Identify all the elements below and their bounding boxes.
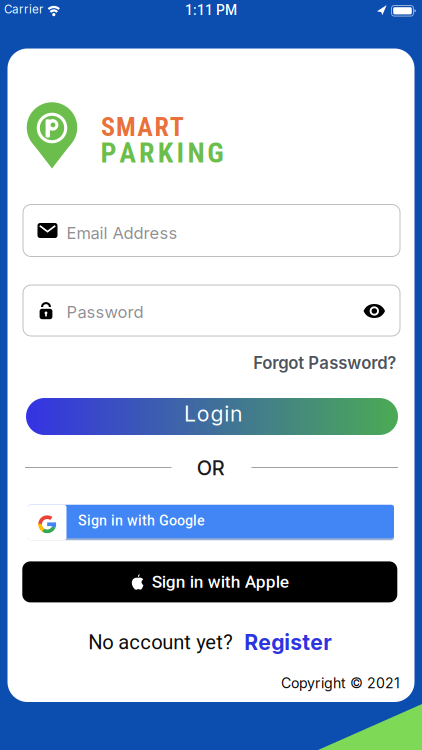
staticText: n <box>230 401 243 427</box>
staticText: OR <box>197 456 225 480</box>
button[interactable]: Show password <box>358 298 391 324</box>
button[interactable]: Forgot Password? <box>251 351 398 375</box>
staticText: Password <box>67 302 144 322</box>
button[interactable]: Password <box>23 285 400 336</box>
staticText: No account yet? <box>88 630 233 654</box>
button[interactable]: L <box>26 398 398 435</box>
staticText: T <box>170 112 184 142</box>
staticText: A <box>119 136 136 169</box>
button[interactable]: Register <box>244 629 332 655</box>
staticText: P <box>100 136 116 169</box>
staticText: Sign in with Google <box>78 512 205 529</box>
staticText: Carrier <box>4 2 43 16</box>
staticText: R <box>139 136 155 169</box>
staticText: g <box>210 401 223 427</box>
staticText: A <box>137 112 153 142</box>
staticText: R <box>154 112 168 142</box>
staticText: M <box>116 112 136 142</box>
button[interactable]: Sign in with Apple <box>22 561 397 602</box>
staticText: Copyright © 2021 <box>281 674 400 691</box>
staticText: Email Address <box>67 223 178 243</box>
button[interactable]: Email Address <box>23 204 400 256</box>
staticText: I <box>177 136 185 169</box>
staticText: 1:11 PM <box>185 2 237 18</box>
staticText: Forgot Password? <box>253 353 396 373</box>
staticText: S <box>101 112 115 142</box>
staticText: Register <box>244 629 332 655</box>
button[interactable]: Sign in with Google <box>28 505 394 541</box>
staticText: G <box>207 136 223 169</box>
staticText: L <box>184 401 196 427</box>
staticText: K <box>158 136 174 169</box>
staticText: Sign in with Apple <box>152 572 289 592</box>
staticText: o <box>197 401 210 427</box>
staticText: i <box>224 401 229 427</box>
staticText: N <box>187 136 204 169</box>
